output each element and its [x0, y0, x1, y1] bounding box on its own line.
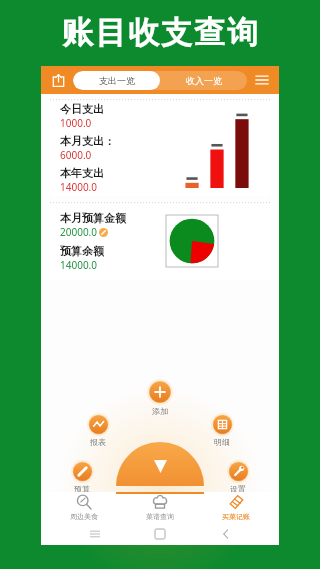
staticText: 本月预算金额 [60, 211, 126, 225]
staticText: 设置 [230, 484, 246, 494]
staticText: 14000.0 [60, 180, 97, 194]
staticText: 报表 [90, 437, 106, 447]
staticText: 菜谱查询 [146, 512, 174, 521]
staticText: 周边美食 [70, 512, 98, 521]
button[interactable]: 添加 [147, 379, 173, 405]
button[interactable]: 买菜记账 [203, 492, 269, 523]
staticText: 预算 [74, 484, 90, 494]
button[interactable]: 预算 [71, 460, 94, 483]
button[interactable]: Home [148, 523, 172, 545]
button[interactable]: Edit budget [99, 228, 108, 237]
button[interactable]: 菜谱查询 [127, 492, 193, 523]
staticText: 买菜记账 [222, 512, 250, 521]
staticText: 6000.0 [60, 148, 92, 162]
staticText: 本年支出 [60, 166, 104, 180]
staticText: 20000.0 [60, 225, 97, 239]
button[interactable]: 今日支出 [50, 99, 270, 196]
staticText: 1000.0 [60, 116, 92, 130]
button[interactable]: Back [214, 523, 238, 545]
button[interactable]: 明细 [211, 413, 234, 436]
button[interactable]: Share [47, 69, 69, 91]
button[interactable]: 支出一览 [73, 71, 160, 90]
staticText: 账目收支查询 [61, 13, 259, 52]
button[interactable]: Recents [83, 523, 107, 545]
staticText: 今日支出 [60, 102, 104, 116]
staticText: 支出一览 [99, 75, 135, 86]
staticText: 收入一览 [186, 75, 222, 86]
button[interactable]: 收入一览 [160, 71, 247, 90]
button[interactable]: 报表 [87, 413, 110, 436]
staticText: 14000.0 [60, 258, 97, 272]
button[interactable]: 周边美食 [51, 492, 117, 523]
button[interactable]: 本月预算金额 [50, 202, 270, 280]
button[interactable]: Collapse menu [116, 442, 204, 486]
staticText: 明细 [214, 437, 230, 447]
staticText: 本月支出： [60, 134, 115, 148]
staticText: 添加 [152, 406, 168, 416]
staticText: 预算余额 [60, 244, 104, 258]
button[interactable]: 设置 [227, 460, 250, 483]
button[interactable]: Menu [251, 69, 273, 91]
